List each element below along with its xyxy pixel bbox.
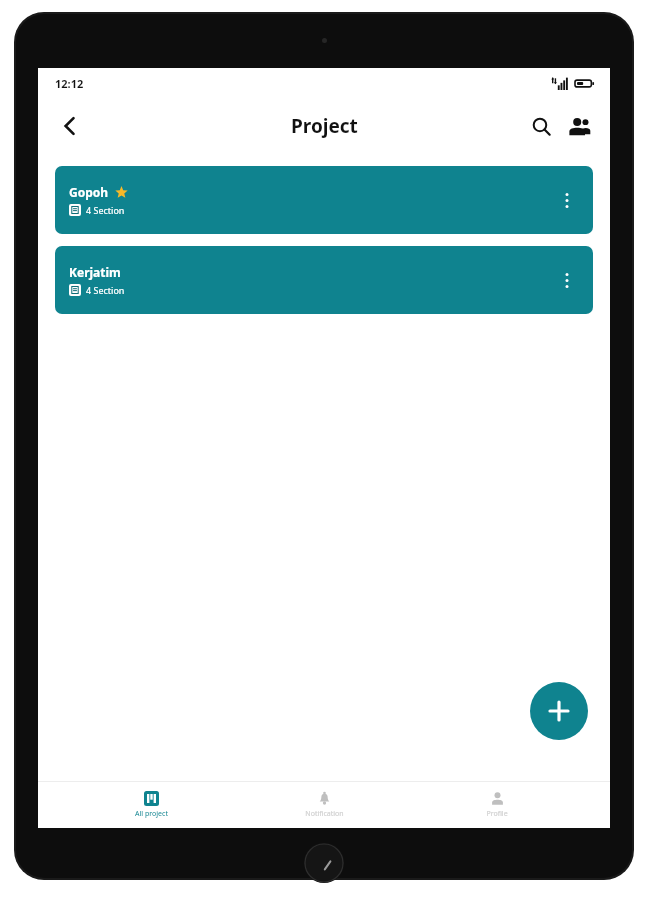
staticText: 12:12 [55,76,84,91]
staticText: Notification [305,809,344,819]
button[interactable]: Members [562,109,596,143]
button[interactable]: More options [549,182,585,218]
button[interactable]: Search [524,109,558,143]
button[interactable]: Gopoh [55,166,593,234]
button[interactable]: Back [50,106,90,146]
staticText: 4 Section [86,204,125,216]
button[interactable]: All project [91,787,211,823]
staticText: Project [291,113,358,139]
staticText: Gopoh [69,184,109,200]
staticText: Profile [486,809,508,819]
button[interactable]: Kerjatim [55,246,593,314]
staticText: All project [135,809,168,819]
button[interactable]: Profile [437,787,557,823]
button[interactable]: More options [549,262,585,298]
button[interactable]: Notification [264,787,384,823]
button[interactable]: Add project [530,682,588,740]
staticText: 4 Section [86,284,125,296]
staticText: Kerjatim [69,264,121,280]
